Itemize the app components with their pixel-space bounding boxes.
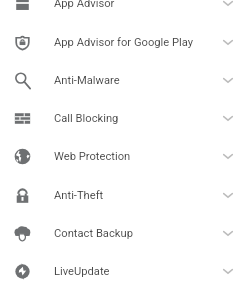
button[interactable]: Web Protection <box>0 137 247 175</box>
button[interactable]: Contact Backup <box>0 214 247 252</box>
button[interactable]: LiveUpdate <box>0 252 247 290</box>
staticText: App Advisor <box>54 0 209 10</box>
staticText: App Advisor for Google Play <box>54 36 209 49</box>
staticText: Contact Backup <box>54 227 209 240</box>
button[interactable]: App Advisor <box>0 0 247 22</box>
button[interactable]: Call Blocking <box>0 99 247 137</box>
staticText: Call Blocking <box>54 112 209 125</box>
button[interactable]: Anti-Malware <box>0 61 247 99</box>
staticText: Anti-Malware <box>54 74 209 87</box>
staticText: Anti-Theft <box>54 189 209 202</box>
button[interactable]: Anti-Theft <box>0 176 247 214</box>
button[interactable]: App Advisor for Google Play <box>0 23 247 61</box>
staticText: LiveUpdate <box>54 265 209 278</box>
staticText: Web Protection <box>54 150 209 163</box>
